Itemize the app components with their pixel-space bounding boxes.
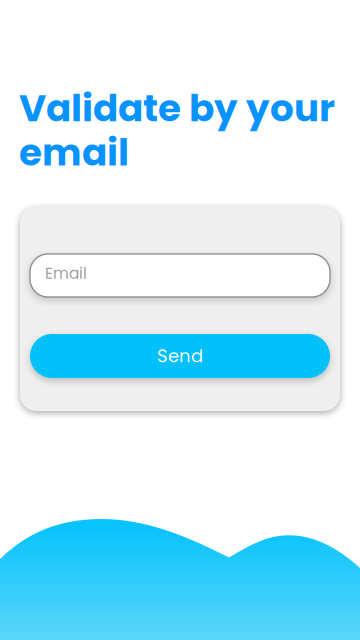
button[interactable]: Send (30, 334, 330, 378)
staticText: Email (45, 263, 87, 284)
staticText: Send (157, 343, 203, 369)
staticText: email (19, 126, 129, 179)
staticText: Validate by your (19, 82, 335, 134)
